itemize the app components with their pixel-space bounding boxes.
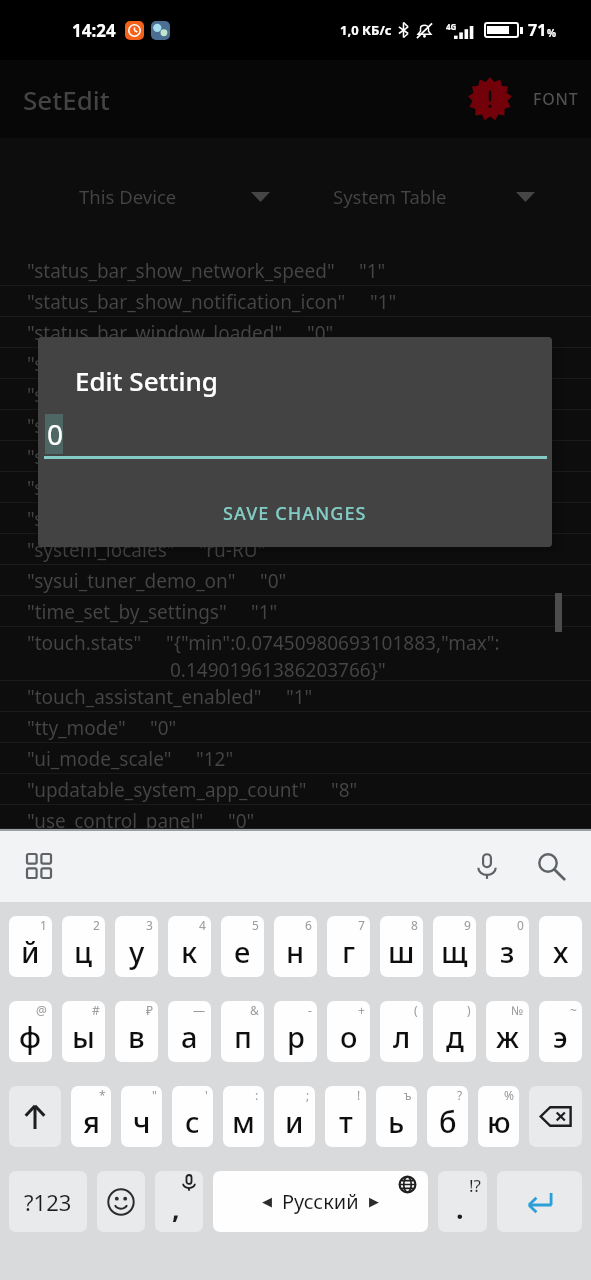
button[interactable]: "status_bar_show_notification_icon" — [0, 286, 591, 317]
button[interactable]: 9 — [433, 916, 476, 977]
button[interactable]: Emoji — [97, 1171, 145, 1232]
button[interactable]: "system_locales" — [0, 534, 591, 565]
staticText: FONT — [533, 88, 579, 110]
button[interactable]: 0 — [486, 916, 529, 977]
button[interactable]: "status_bar_zen_mode" — [0, 348, 591, 379]
button[interactable]: * — [71, 1086, 111, 1147]
staticText: * — [99, 1087, 106, 1103]
button[interactable]: " — [121, 1086, 162, 1147]
staticText: SAVE CHANGES — [223, 501, 367, 526]
button[interactable]: "touch.stats" — [0, 627, 591, 681]
staticText: б — [439, 1102, 457, 1141]
staticText: "wifi,bt" — [185, 506, 256, 532]
staticText: "touch.stats" — [27, 630, 142, 656]
staticText: н — [286, 932, 305, 971]
staticText: ◀ — [262, 1194, 272, 1209]
button[interactable]: 8 — [380, 916, 423, 977]
button[interactable]: "time_set_by_settings" — [0, 596, 591, 627]
staticText: г — [342, 932, 356, 971]
button[interactable]: : — [223, 1086, 264, 1147]
staticText: : — [255, 1087, 259, 1103]
button[interactable]: "ui_mode_scale" — [0, 743, 591, 774]
button[interactable]: 3 — [115, 916, 158, 977]
button[interactable]: 4 — [168, 916, 211, 977]
button[interactable]: "sysui_qs_tiles" — [0, 503, 591, 534]
staticText: "sysui_keyguard_sounds" — [27, 475, 252, 501]
button[interactable]: Warning — [467, 76, 513, 122]
staticText: ?123 — [24, 1187, 72, 1217]
staticText: ₽ — [146, 1002, 153, 1018]
button[interactable]: @ — [9, 1001, 52, 1062]
button[interactable]: ; — [274, 1086, 315, 1147]
button[interactable]: & — [221, 1001, 264, 1062]
staticText: % — [504, 1087, 514, 1103]
button[interactable]: № — [486, 1001, 529, 1062]
button[interactable]: Backspace — [529, 1086, 582, 1147]
button[interactable]: Search — [528, 843, 574, 889]
button[interactable]: "status_bar_window_loaded" — [0, 317, 591, 348]
button[interactable]: 7 — [327, 916, 370, 977]
button[interactable]: 2 — [62, 916, 105, 977]
button[interactable]: Keyboard modes — [18, 845, 60, 887]
staticText: е — [234, 932, 251, 971]
staticText: , — [172, 1190, 180, 1227]
button[interactable]: ( — [380, 1001, 423, 1062]
staticText: ( — [414, 1002, 418, 1018]
staticText: "updatable_system_app_count" — [27, 777, 307, 803]
button[interactable]: "tty_mode" — [0, 712, 591, 743]
staticText: "status_bar_show_network_speed" — [27, 258, 335, 284]
staticText: "0" — [307, 320, 334, 346]
staticText: "12" — [196, 746, 234, 772]
button[interactable]: "synced_device_state" — [0, 441, 591, 472]
staticText: ц — [74, 932, 93, 971]
button[interactable]: 6 — [274, 916, 317, 977]
button[interactable]: "touch_assistant_enabled" — [0, 681, 591, 712]
staticText: "1" — [246, 444, 273, 470]
staticText: я — [83, 1102, 100, 1141]
staticText: ь — [388, 1102, 405, 1141]
button[interactable]: This Device — [0, 138, 296, 255]
button[interactable]: 5 — [221, 916, 264, 977]
staticText: х — [553, 932, 569, 971]
button[interactable]: ) — [433, 1001, 476, 1062]
button[interactable]: ? — [427, 1086, 468, 1147]
button[interactable]: , — [155, 1171, 203, 1232]
button[interactable]: "sync_parent_sounds" — [0, 410, 591, 441]
button[interactable]: !? — [438, 1171, 487, 1232]
button[interactable]: "sysui_tuner_demo_on" — [0, 565, 591, 596]
staticText: "1" — [251, 599, 278, 625]
staticText: щ — [441, 932, 468, 971]
button[interactable]: - — [274, 1001, 317, 1062]
staticText: л — [393, 1017, 411, 1056]
button[interactable]: % — [478, 1086, 519, 1147]
button[interactable]: — — [168, 1001, 211, 1062]
button[interactable]: SAVE CHANGES — [38, 489, 552, 537]
button[interactable]: ?123 — [9, 1171, 87, 1232]
button[interactable]: ! — [325, 1086, 366, 1147]
button[interactable]: Enter — [497, 1171, 582, 1232]
button[interactable]: "status_bar_show_network_speed" — [0, 255, 591, 286]
button[interactable]: + — [327, 1001, 370, 1062]
button[interactable]: ◀ — [213, 1171, 428, 1232]
button[interactable]: System Table — [296, 138, 591, 255]
button[interactable]: "sysui_keyguard_sounds" — [0, 472, 591, 503]
button[interactable]: # — [62, 1001, 105, 1062]
button[interactable]: Shift — [9, 1086, 61, 1147]
button[interactable]: 1 — [9, 916, 52, 977]
staticText: . — [456, 1190, 464, 1227]
button[interactable]: ₽ — [115, 1001, 158, 1062]
button[interactable]: х — [539, 916, 582, 977]
staticText: "ru-RU" — [199, 537, 266, 563]
button[interactable]: FONT — [527, 80, 585, 118]
staticText: 7 — [358, 917, 365, 933]
button[interactable]: ъ — [376, 1086, 417, 1147]
button[interactable]: "storage_benchmark_interval" — [0, 379, 591, 410]
button[interactable]: Voice input — [464, 843, 510, 889]
button[interactable]: "use_control_panel" — [0, 805, 591, 829]
staticText: # — [92, 1002, 100, 1018]
button[interactable]: ~ — [539, 1001, 582, 1062]
button[interactable]: "updatable_system_app_count" — [0, 774, 591, 805]
staticText: 5 — [252, 917, 259, 933]
button[interactable]: ' — [172, 1086, 213, 1147]
